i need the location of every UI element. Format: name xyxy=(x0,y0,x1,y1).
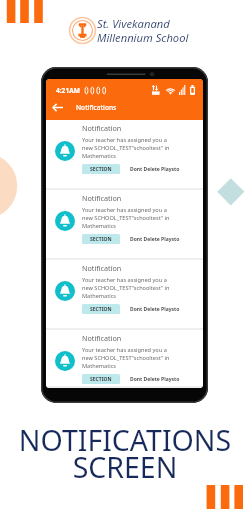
staticText: Notification xyxy=(82,193,122,203)
staticText: SECTION xyxy=(90,166,112,173)
staticText: Dont Delete Playsto xyxy=(130,376,180,383)
button[interactable]: Back xyxy=(50,100,64,114)
staticText: Notifications xyxy=(76,103,117,112)
button[interactable]: Notification xyxy=(46,190,203,260)
staticText: Your teacher has assigned you a new SCHO… xyxy=(82,206,170,230)
staticText: Dont Delete Playsto xyxy=(130,236,180,243)
staticText: 4:21AM xyxy=(56,86,80,95)
staticText: SECTION xyxy=(90,376,112,383)
button[interactable]: SECTION xyxy=(82,374,120,384)
staticText: St. Vivekanand Millennium School xyxy=(97,16,189,45)
staticText: Notification xyxy=(82,123,122,133)
button[interactable]: SECTION xyxy=(82,304,120,314)
staticText: Notification xyxy=(82,263,122,273)
staticText: Dont Delete Playsto xyxy=(130,166,180,173)
staticText: NOTIFICATIONS xyxy=(0,421,250,460)
button[interactable]: SECTION xyxy=(82,164,120,174)
staticText: SECTION xyxy=(90,236,112,243)
staticText: Your teacher has assigned you a new SCHO… xyxy=(82,276,170,300)
button[interactable]: Notification xyxy=(46,260,203,330)
button[interactable]: SECTION xyxy=(82,234,120,244)
staticText: Your teacher has assigned you a new SCHO… xyxy=(82,136,170,160)
button[interactable]: Notification xyxy=(46,120,203,190)
staticText: SCREEN xyxy=(0,448,250,487)
button[interactable]: Notification xyxy=(46,330,203,388)
staticText: SECTION xyxy=(90,306,112,313)
staticText: Your teacher has assigned you a new SCHO… xyxy=(82,346,170,370)
staticText: Dont Delete Playsto xyxy=(130,306,180,313)
staticText: Notification xyxy=(82,333,122,343)
